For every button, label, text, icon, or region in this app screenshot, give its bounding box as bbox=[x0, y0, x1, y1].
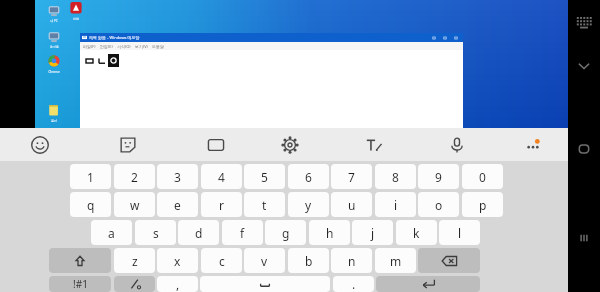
button[interactable]: n bbox=[331, 248, 372, 273]
staticText: p bbox=[479, 197, 487, 213]
button[interactable]: 5 bbox=[244, 164, 285, 189]
staticText: 1 bbox=[87, 169, 94, 185]
button[interactable]: h bbox=[309, 220, 350, 245]
button[interactable]: o bbox=[418, 192, 459, 217]
staticText: 4 bbox=[218, 169, 225, 185]
button[interactable]: Home bbox=[568, 133, 600, 165]
button[interactable]: . bbox=[333, 276, 374, 292]
button[interactable]: b bbox=[288, 248, 329, 273]
button[interactable]: x bbox=[157, 248, 198, 273]
button[interactable]: u bbox=[331, 192, 372, 217]
staticText: s bbox=[153, 225, 159, 241]
staticText: !#1 bbox=[73, 277, 88, 291]
staticText: 7 bbox=[348, 169, 355, 185]
button[interactable]: 2 bbox=[114, 164, 155, 189]
staticText: u bbox=[348, 197, 356, 213]
button[interactable]: 9 bbox=[418, 164, 459, 189]
button[interactable]: g bbox=[265, 220, 306, 245]
button[interactable]: z bbox=[114, 248, 155, 273]
button[interactable]: Stickers bbox=[112, 129, 144, 161]
staticText: e bbox=[174, 197, 181, 213]
button[interactable]: Backspace bbox=[418, 248, 480, 273]
staticText: y bbox=[305, 197, 312, 213]
staticText: w bbox=[130, 197, 140, 213]
button[interactable]: q bbox=[70, 192, 111, 217]
button[interactable]: t bbox=[244, 192, 285, 217]
button[interactable]: w bbox=[114, 192, 155, 217]
button[interactable]: s bbox=[135, 220, 176, 245]
staticText: 편집(E) bbox=[100, 44, 113, 49]
staticText: 9 bbox=[435, 169, 442, 185]
button[interactable]: p bbox=[462, 192, 503, 217]
staticText: 6 bbox=[305, 169, 312, 185]
staticText: i bbox=[394, 197, 398, 213]
button[interactable]: Recent apps bbox=[568, 222, 600, 254]
staticText: 도움말 bbox=[152, 44, 164, 49]
button[interactable]: !#1 bbox=[49, 276, 111, 292]
staticText: n bbox=[348, 253, 356, 269]
button[interactable]: a bbox=[91, 220, 132, 245]
button[interactable]: y bbox=[288, 192, 329, 217]
staticText: 3 bbox=[174, 169, 181, 185]
button[interactable]: , bbox=[157, 276, 198, 292]
staticText: d bbox=[195, 225, 203, 241]
staticText: 안랩 bbox=[73, 17, 79, 21]
button[interactable]: r bbox=[201, 192, 242, 217]
button[interactable]: 3 bbox=[157, 164, 198, 189]
staticText: k bbox=[413, 225, 420, 241]
button[interactable]: i bbox=[375, 192, 416, 217]
button[interactable]: Shift bbox=[49, 248, 111, 273]
staticText: . bbox=[352, 276, 356, 292]
staticText: g bbox=[282, 225, 290, 241]
button[interactable]: e bbox=[157, 192, 198, 217]
button[interactable]: j bbox=[352, 220, 393, 245]
button[interactable]: Show keyboard bbox=[568, 6, 600, 38]
staticText: 휴지통 bbox=[50, 45, 59, 49]
staticText: z bbox=[132, 253, 138, 269]
staticText: 폴더 bbox=[51, 119, 57, 123]
button[interactable]: Handwriting bbox=[358, 129, 390, 161]
staticText: b bbox=[305, 253, 313, 269]
staticText: 파일(F) bbox=[83, 44, 96, 49]
staticText: 8 bbox=[392, 169, 399, 185]
staticText: 0 bbox=[479, 169, 486, 185]
staticText: , bbox=[176, 276, 180, 292]
button[interactable]: Voice input bbox=[441, 129, 473, 161]
button[interactable]: GIF bbox=[200, 129, 232, 161]
button[interactable]: Emoji bbox=[24, 129, 56, 161]
button[interactable]: 0 bbox=[462, 164, 503, 189]
button[interactable]: Keyboard settings bbox=[274, 129, 306, 161]
button[interactable]: l bbox=[439, 220, 480, 245]
staticText: t bbox=[262, 197, 267, 213]
button[interactable]: 4 bbox=[201, 164, 242, 189]
button[interactable]: k bbox=[396, 220, 437, 245]
staticText: Chrome bbox=[48, 70, 60, 74]
button[interactable]: m bbox=[375, 248, 416, 273]
staticText: 서식(O) bbox=[117, 44, 131, 49]
button[interactable]: 6 bbox=[288, 164, 329, 189]
button[interactable]: 8 bbox=[375, 164, 416, 189]
button[interactable]: c bbox=[201, 248, 242, 273]
staticText: q bbox=[87, 197, 95, 213]
staticText: m bbox=[390, 253, 402, 269]
staticText: r bbox=[219, 197, 224, 213]
button[interactable]: Hide keyboard bbox=[568, 50, 600, 82]
button[interactable]: f bbox=[222, 220, 263, 245]
staticText: a bbox=[108, 225, 115, 241]
button[interactable]: More options bbox=[517, 129, 549, 161]
button[interactable]: Space bbox=[200, 276, 330, 292]
staticText: x bbox=[174, 253, 181, 269]
button[interactable]: Enter bbox=[376, 276, 480, 292]
staticText: v bbox=[261, 253, 268, 269]
button[interactable]: Language bbox=[114, 276, 155, 292]
staticText: 제목 없음 - Windows 메모장 bbox=[89, 35, 140, 40]
staticText: 2 bbox=[131, 169, 138, 185]
staticText: h bbox=[326, 225, 334, 241]
staticText: l bbox=[458, 225, 462, 241]
staticText: c bbox=[219, 253, 225, 269]
button[interactable]: 7 bbox=[331, 164, 372, 189]
button[interactable]: v bbox=[244, 248, 285, 273]
button[interactable]: d bbox=[178, 220, 219, 245]
staticText: 내 PC bbox=[50, 19, 58, 23]
button[interactable]: 1 bbox=[70, 164, 111, 189]
